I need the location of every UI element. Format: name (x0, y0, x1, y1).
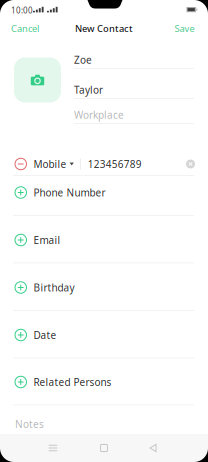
staticText: Notes (15, 417, 44, 431)
button[interactable]: Email (15, 223, 195, 257)
staticText: Birthday (33, 281, 74, 294)
button[interactable]: Back (138, 434, 168, 462)
button[interactable]: Date (15, 318, 195, 352)
staticText: Save (174, 22, 194, 35)
staticText: Workplace (74, 108, 124, 122)
staticText: 10:00 (11, 5, 33, 16)
button[interactable]: Phone Number (15, 175, 195, 209)
button[interactable]: Related Persons (15, 365, 195, 399)
staticText: Zoe (74, 53, 92, 67)
staticText: Cancel (11, 22, 39, 35)
staticText: Phone Number (33, 186, 105, 199)
staticText: 123456789 (88, 157, 142, 171)
staticText: Related Persons (33, 375, 111, 389)
staticText: Date (33, 328, 56, 342)
button[interactable]: Notes (15, 411, 196, 437)
button[interactable]: Home (89, 434, 119, 462)
button[interactable]: Cancel (3, 17, 47, 39)
button[interactable]: Add contact photo (14, 57, 61, 102)
button[interactable]: Recent apps (38, 434, 68, 462)
button[interactable]: Save (164, 17, 204, 39)
staticText: Taylor (74, 83, 103, 97)
staticText: New Contact (75, 22, 133, 35)
staticText: Mobile (33, 157, 66, 171)
button[interactable]: Birthday (15, 270, 195, 304)
button[interactable]: Mobile (15, 149, 195, 179)
staticText: Email (33, 233, 60, 247)
